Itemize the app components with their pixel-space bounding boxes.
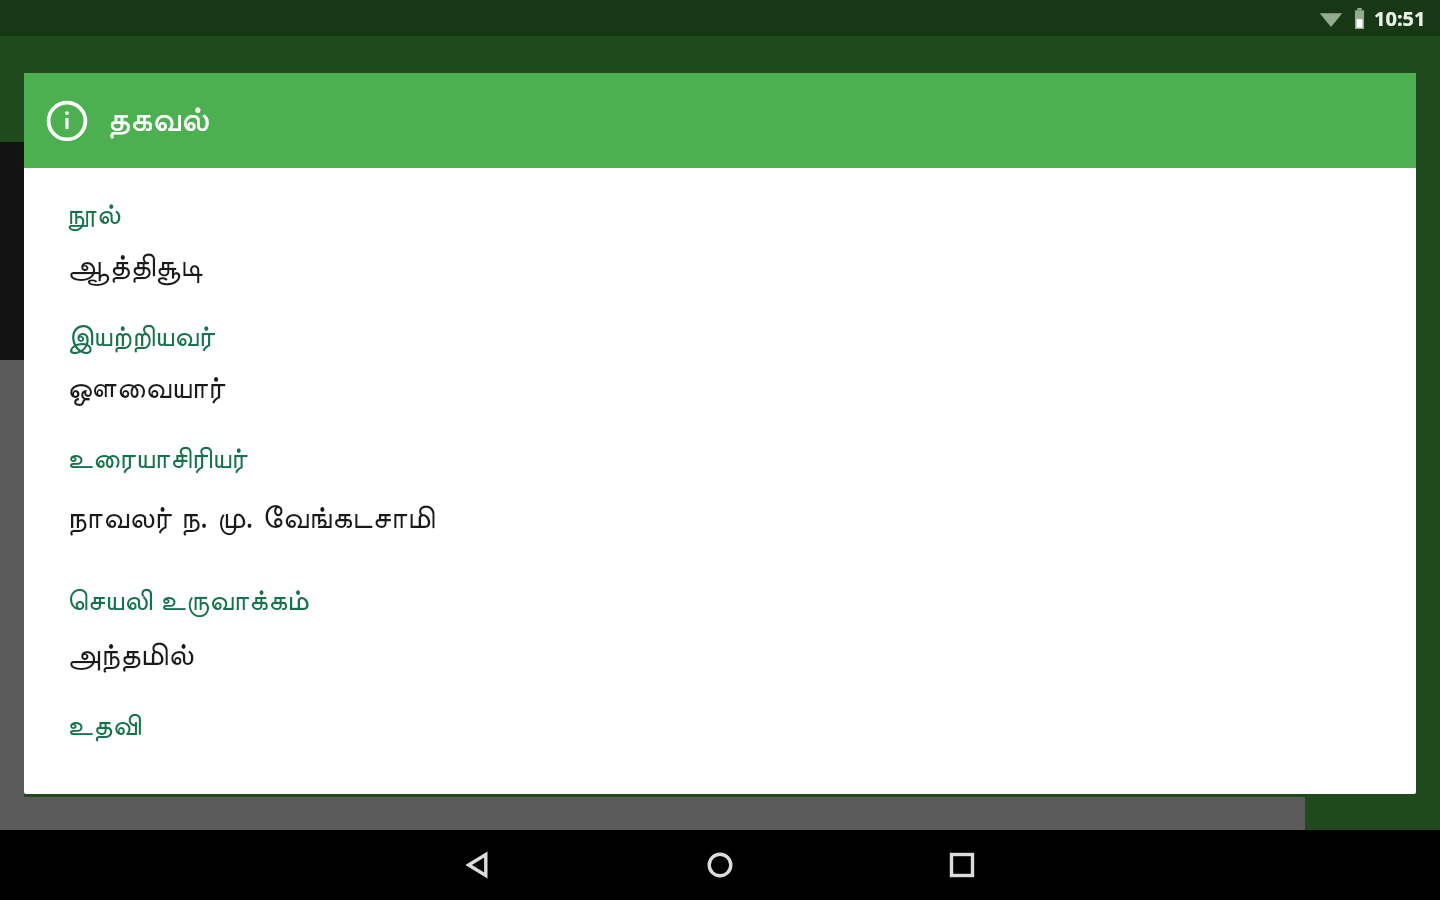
staticText: அந்தமில் <box>67 639 194 671</box>
other: Information <box>46 100 88 142</box>
button[interactable]: Home <box>685 830 755 900</box>
staticText: உரையாசிரியர் <box>67 444 248 474</box>
staticText: ஔவையார் <box>67 372 226 404</box>
staticText: ஆத்திசூடி <box>67 250 203 282</box>
staticText: தகவல் <box>107 103 209 138</box>
staticText: உதவி <box>67 711 142 741</box>
button[interactable]: Information <box>24 73 1416 168</box>
button[interactable]: நூல் <box>67 200 1416 322</box>
staticText: 10:51 <box>1374 5 1426 32</box>
button[interactable]: செயலி உருவாக்கம் <box>67 578 1416 711</box>
staticText: இயற்றியவர் <box>67 322 215 352</box>
staticText: நூல் <box>67 200 121 230</box>
button[interactable]: உரையாசிரியர் <box>67 444 1416 578</box>
button[interactable]: இயற்றியவர் <box>67 322 1416 444</box>
button[interactable]: Recent apps <box>927 830 997 900</box>
staticText: நாவலர் ந. மு. வேங்கடசாமி <box>67 494 435 538</box>
button[interactable]: உதவி <box>67 711 1416 741</box>
button[interactable]: Back <box>443 830 513 900</box>
staticText: செயலி உருவாக்கம் <box>67 578 309 619</box>
